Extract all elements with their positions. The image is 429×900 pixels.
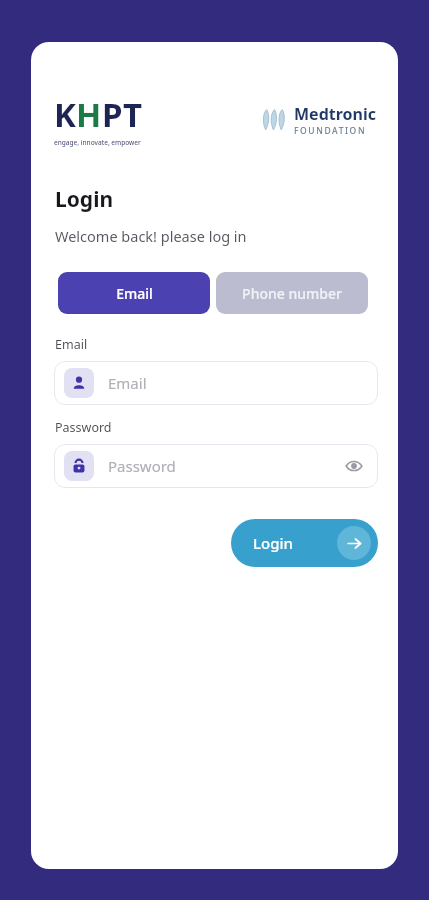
staticText: Phone number [242,284,342,303]
other: Login [347,536,362,551]
button[interactable]: Login [231,519,378,567]
button[interactable]: Show password [340,452,368,480]
staticText: Email [108,373,147,393]
staticText: FOUNDATION [294,125,367,137]
staticText: Welcome back! please log in [55,226,247,246]
staticText: Email [55,336,88,353]
button[interactable]: Phone number [216,272,368,314]
button[interactable]: Password [54,444,378,488]
staticText: H [76,92,102,137]
staticText: Medtronic [294,103,376,125]
staticText: engage, innovate, empower [54,138,141,147]
staticText: Login [253,533,293,553]
button[interactable]: Email [58,272,210,314]
staticText: Email [116,284,153,303]
staticText: T [123,92,143,137]
staticText: K [54,92,76,137]
button[interactable]: Email [54,361,378,405]
staticText: Password [55,419,112,436]
staticText: Login [55,185,114,214]
staticText: P [102,92,123,137]
staticText: Password [108,456,176,476]
